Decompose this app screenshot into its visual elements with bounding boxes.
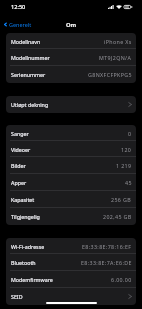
button[interactable]: Videoer [6,141,136,157]
staticText: E8:33:8E:7A:E6:DE [81,259,132,266]
staticText: Kapasitet [11,196,35,203]
button[interactable]: Kapasitet [6,191,136,208]
button[interactable]: SEID [6,288,136,305]
button[interactable]: Generelt [2,19,33,30]
button[interactable]: Tilgjengelig [6,208,136,225]
staticText: SEID [11,293,23,300]
staticText: iPhone Xs [104,38,132,45]
staticText: 12:50 [11,3,26,11]
button[interactable]: Modellnummer [6,49,136,66]
staticText: Modellnummer [11,54,50,61]
staticText: 0 [128,130,132,137]
button[interactable]: Serienummer [6,66,136,83]
button[interactable]: Modellnavn [6,33,136,49]
staticText: Apper [11,179,27,186]
button[interactable]: Apper [6,174,136,191]
staticText: Modellnavn [11,38,41,45]
staticText: MT9J2QN/A [99,54,132,61]
staticText: 202,45 GB [103,213,132,220]
staticText: Utløpt dekning [11,101,49,108]
staticText: Generelt [9,21,32,28]
staticText: Wi-Fi-adresse [11,243,45,250]
staticText: 256 GB [111,196,132,203]
staticText: Tilgjengelig [11,213,40,220]
staticText: 6.00.00 [111,276,132,283]
staticText: 45 [125,179,132,186]
staticText: Sanger [11,130,29,137]
button[interactable]: Modemfirmware [6,271,136,288]
staticText: Bluetooth [11,259,36,266]
button[interactable]: Wi-Fi-adresse [6,238,136,254]
button[interactable]: Sanger [6,125,136,141]
staticText: Videoer [11,146,31,153]
staticText: 1 219 [116,162,132,169]
staticText: Bilder [11,162,26,169]
button[interactable]: Bluetooth [6,254,136,271]
button[interactable]: Bilder [6,157,136,174]
staticText: 120 [121,146,132,153]
staticText: E8:33:8E:78:16:EF [82,243,132,250]
staticText: Serienummer [11,71,46,78]
button[interactable]: Utløpt dekning [6,96,136,113]
staticText: Modemfirmware [11,276,53,283]
staticText: G8NXFCFPKPG5 [88,71,132,78]
staticText: Om [66,21,77,29]
